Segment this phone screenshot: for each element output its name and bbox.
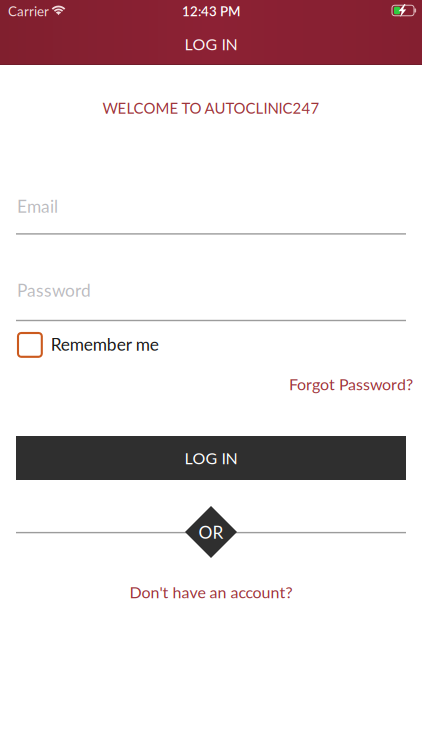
staticText: LOG IN — [184, 448, 237, 468]
button[interactable]: Don't have an account? — [0, 582, 422, 602]
staticText: Email — [17, 196, 58, 216]
staticText: OR — [198, 522, 223, 542]
button[interactable]: Remember me — [18, 330, 168, 360]
staticText: LOG IN — [184, 34, 237, 54]
staticText: Carrier — [8, 3, 49, 19]
button[interactable]: LOG IN — [16, 436, 406, 480]
button[interactable]: Forgot Password? — [233, 373, 413, 395]
staticText: 12:43 PM — [182, 3, 240, 19]
staticText: Remember me — [51, 334, 159, 354]
staticText: Don't have an account? — [129, 582, 292, 602]
staticText: WELCOME TO AUTOCLINIC247 — [102, 99, 319, 117]
staticText: Password — [17, 280, 91, 300]
staticText: Forgot Password? — [289, 374, 413, 394]
